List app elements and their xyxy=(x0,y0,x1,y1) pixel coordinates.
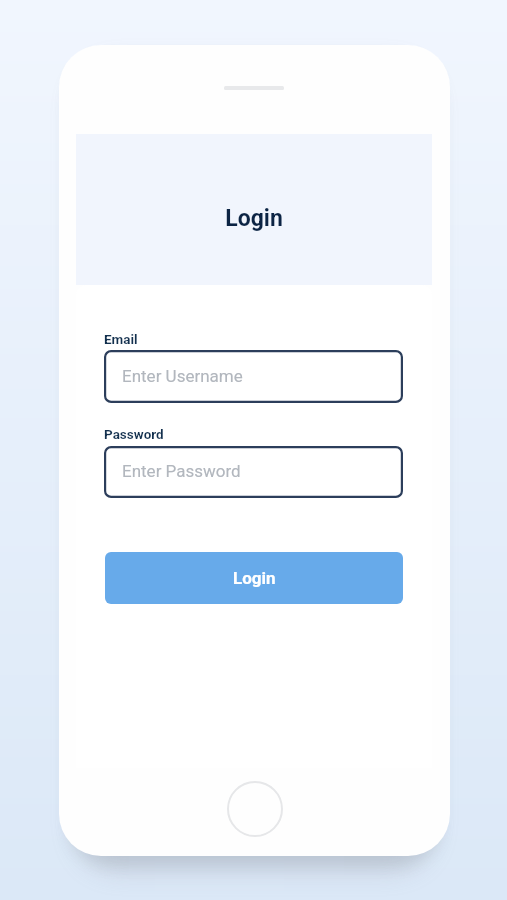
staticText: Login xyxy=(76,205,432,245)
button[interactable]: Enter Password xyxy=(104,446,403,498)
staticText: Email xyxy=(104,331,138,347)
staticText: Login xyxy=(233,568,276,588)
button[interactable]: Home xyxy=(227,781,283,837)
staticText: Enter Password xyxy=(122,461,241,481)
staticText: Password xyxy=(104,426,164,442)
staticText: Enter Username xyxy=(122,366,243,386)
button[interactable]: Enter Username xyxy=(104,350,403,403)
button[interactable]: Login xyxy=(105,552,403,604)
